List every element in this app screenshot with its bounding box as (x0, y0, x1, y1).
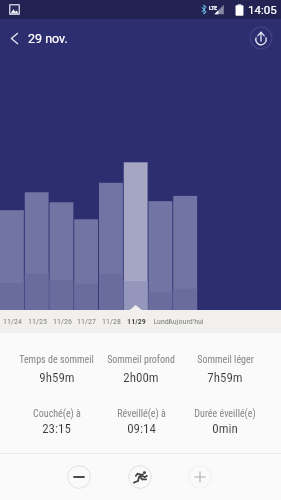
staticText: Couché(e) à (33, 408, 81, 420)
button[interactable]: Share (248, 25, 274, 51)
staticText: 11/29 (127, 317, 146, 326)
button[interactable]: Decrease (67, 465, 91, 489)
staticText: Temps de sommeil (19, 354, 94, 366)
button[interactable]: 11/29 (124, 310, 149, 333)
staticText: 11/26 (53, 317, 72, 326)
button[interactable]: Increase (188, 465, 212, 489)
staticText: 11/25 (28, 317, 47, 326)
button[interactable]: Aujourd'hui (173, 310, 198, 333)
staticText: 7h59m (207, 370, 243, 385)
staticText: 14:05 (248, 3, 277, 16)
button[interactable]: 11/27 (74, 310, 99, 333)
button[interactable]: 11/25 (25, 310, 50, 333)
staticText: Lundi (153, 317, 171, 326)
staticText: Sommeil profond (107, 354, 175, 366)
staticText: 2h00m (123, 370, 159, 385)
staticText: Sommeil léger (197, 354, 254, 366)
staticText: 09:14 (127, 421, 156, 436)
staticText: 23:15 (42, 421, 71, 436)
staticText: 9h59m (39, 370, 75, 385)
staticText: 11/24 (3, 317, 22, 326)
button[interactable]: Back (2, 26, 26, 50)
staticText: Durée éveillé(e) (194, 408, 256, 420)
button[interactable]: 11/24 (0, 310, 25, 333)
button[interactable]: 11/26 (50, 310, 75, 333)
button[interactable]: Lundi (149, 310, 174, 333)
button[interactable]: 11/28 (99, 310, 124, 333)
staticText: 29 nov. (28, 31, 68, 46)
staticText: Aujourd'hui (168, 317, 204, 326)
button[interactable]: Activity (128, 465, 152, 489)
staticText: Réveillé(e) à (117, 408, 166, 420)
staticText: 11/28 (102, 317, 121, 326)
staticText: 11/27 (77, 317, 96, 326)
staticText: LTE (209, 5, 218, 11)
staticText: 0min (212, 421, 238, 436)
